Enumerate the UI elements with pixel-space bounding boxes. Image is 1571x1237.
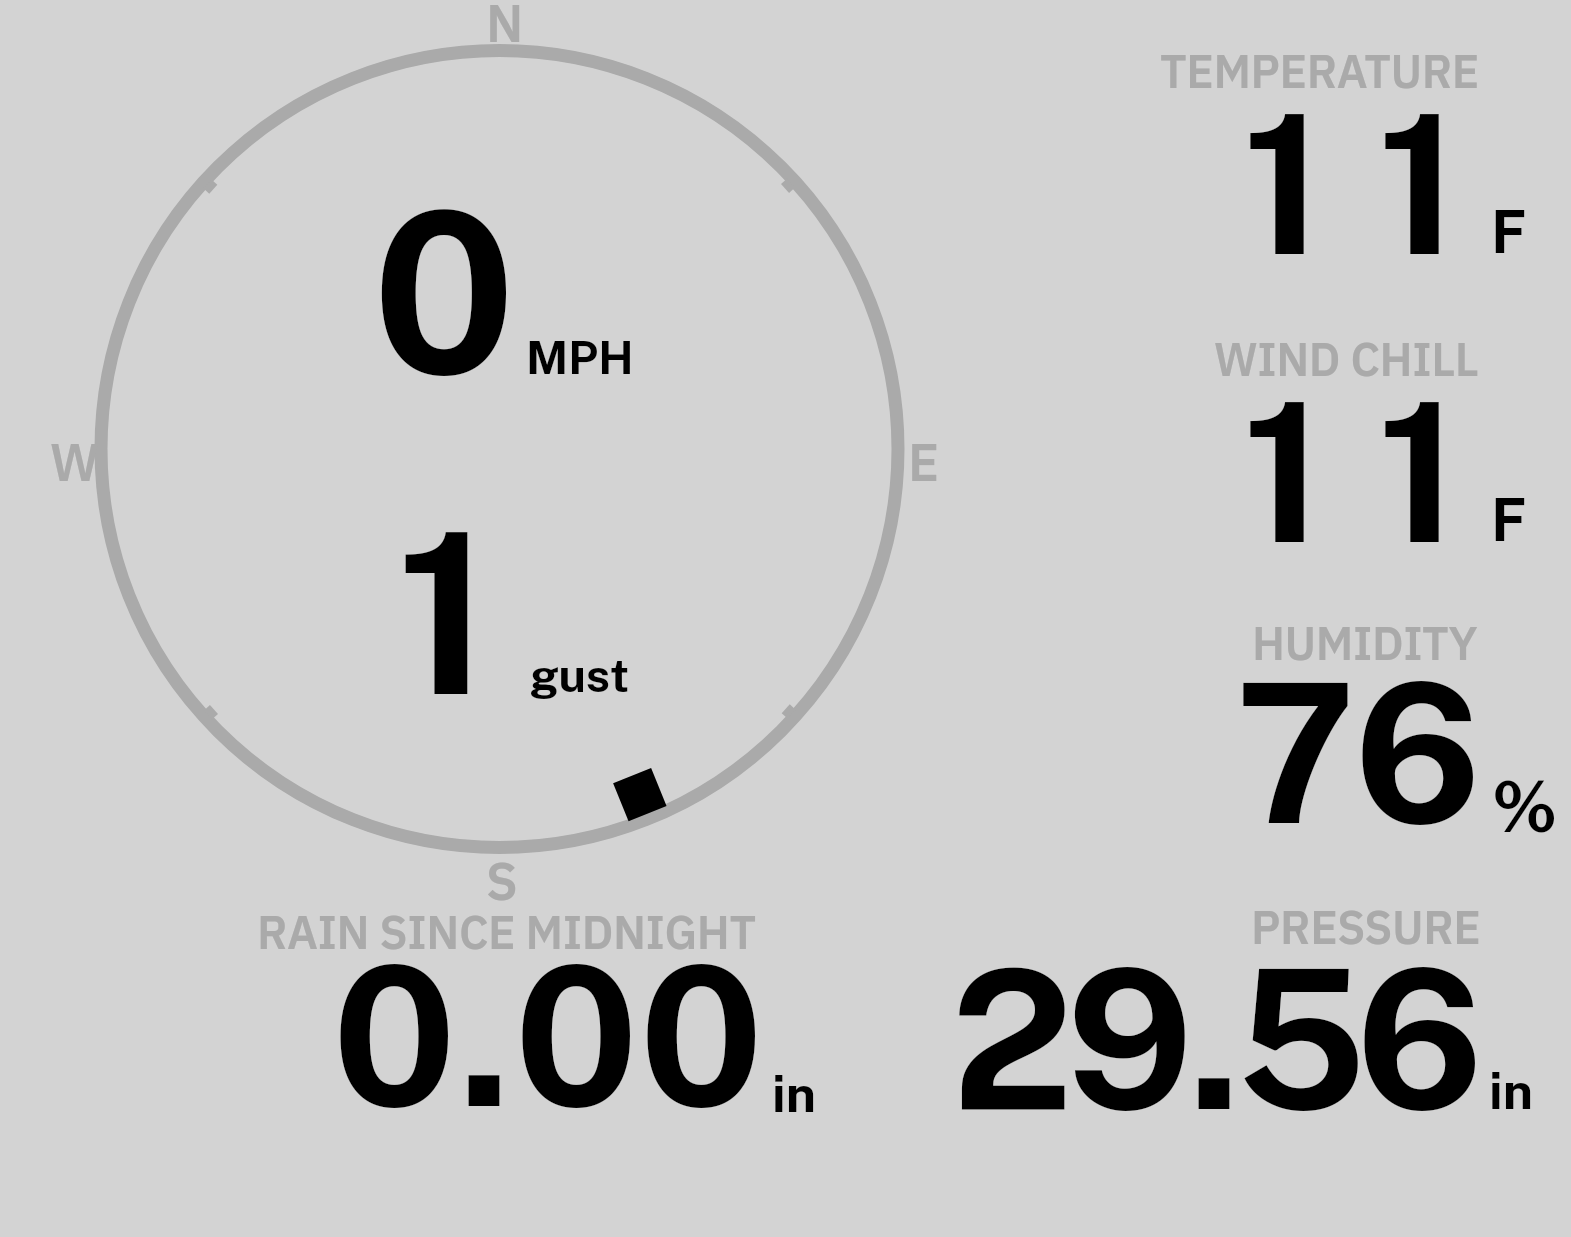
button[interactable]: Pressure 29.56 inches bbox=[940, 895, 1571, 1125]
staticText: 1 bbox=[396, 482, 492, 744]
staticText: N bbox=[486, 0, 523, 57]
button[interactable]: Wind speed 0 MPH, gust 1, direction sout… bbox=[95, 45, 905, 855]
staticText: 1 bbox=[1242, 71, 1325, 298]
staticText: . bbox=[459, 923, 512, 1150]
staticText: WIND CHILL bbox=[1214, 329, 1479, 389]
staticText: 0 bbox=[332, 923, 457, 1150]
staticText: in bbox=[1489, 1061, 1534, 1121]
staticText: TEMPERATURE bbox=[1160, 41, 1479, 101]
staticText: 9 bbox=[1066, 926, 1194, 1153]
staticText: 2 bbox=[951, 926, 1074, 1153]
staticText: % bbox=[1492, 765, 1558, 847]
staticText: 1 bbox=[1242, 359, 1325, 586]
staticText: 0 bbox=[372, 162, 516, 424]
staticText: HUMIDITY bbox=[1252, 613, 1478, 673]
staticText: 1 bbox=[1377, 71, 1460, 298]
staticText: 7 bbox=[1235, 640, 1356, 867]
staticText: MPH bbox=[526, 330, 634, 384]
staticText: S bbox=[486, 847, 518, 915]
button[interactable]: Temperature 11 degrees Fahrenheit bbox=[1150, 40, 1571, 300]
staticText: E bbox=[908, 428, 939, 496]
staticText: W bbox=[50, 428, 99, 496]
staticText: 6 bbox=[1354, 640, 1482, 867]
staticText: 0 bbox=[514, 923, 639, 1150]
button[interactable]: Humidity 76 percent bbox=[1150, 612, 1571, 867]
staticText: in bbox=[772, 1064, 817, 1124]
staticText: 1 bbox=[1377, 359, 1460, 586]
staticText: PRESSURE bbox=[1251, 897, 1481, 957]
staticText: F bbox=[1491, 486, 1527, 554]
staticText: F bbox=[1491, 198, 1527, 266]
staticText: 6 bbox=[1356, 926, 1484, 1153]
button[interactable]: Wind chill 11 degrees Fahrenheit bbox=[1150, 328, 1571, 588]
staticText: 0 bbox=[639, 923, 764, 1150]
button[interactable]: Rain since midnight 0.00 inches bbox=[240, 900, 840, 1125]
staticText: gust bbox=[530, 648, 630, 702]
staticText: 5 bbox=[1236, 926, 1367, 1153]
staticText: RAIN SINCE MIDNIGHT bbox=[257, 902, 756, 962]
staticText: . bbox=[1189, 926, 1242, 1153]
